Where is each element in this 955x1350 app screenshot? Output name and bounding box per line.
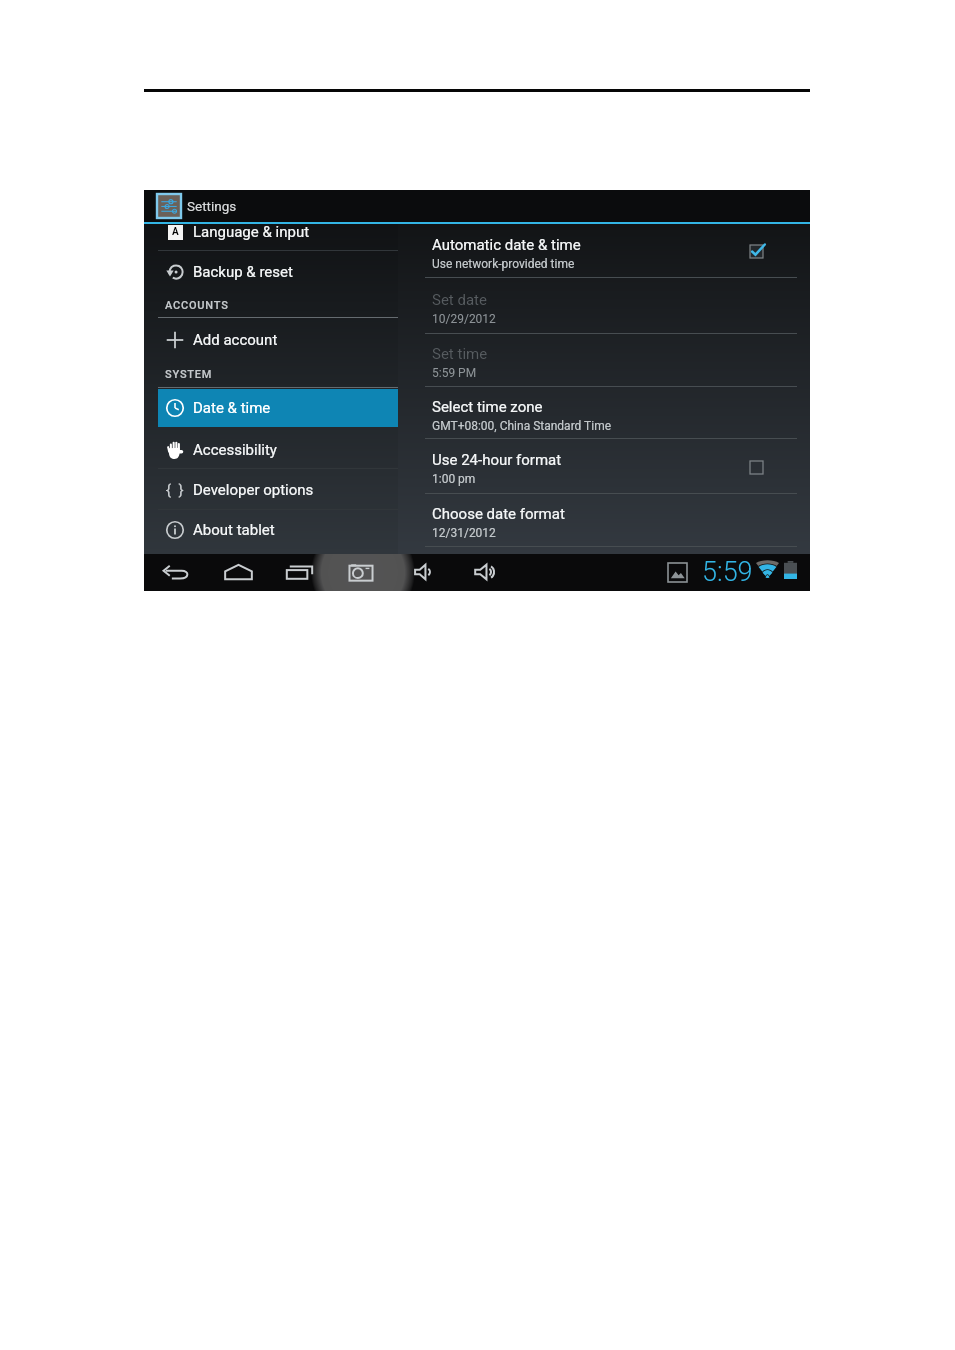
staticText: GMT+08:00, China Standard Time bbox=[432, 419, 612, 433]
button[interactable] bbox=[398, 333, 810, 386]
staticText: Language & input bbox=[193, 223, 310, 241]
button[interactable] bbox=[398, 386, 810, 438]
staticText: Use 24-hour format bbox=[432, 451, 562, 469]
button[interactable]: Add account bbox=[158, 323, 398, 357]
staticText: About tablet bbox=[193, 521, 275, 539]
staticText: 5:59 bbox=[702, 556, 753, 588]
button[interactable] bbox=[398, 438, 810, 493]
button[interactable] bbox=[398, 493, 810, 546]
button[interactable]: Home bbox=[221, 554, 255, 590]
staticText: SYSTEM bbox=[165, 368, 213, 381]
staticText: 10/29/2012 bbox=[432, 312, 496, 326]
button[interactable] bbox=[398, 224, 810, 277]
button[interactable]: Volume down bbox=[408, 554, 442, 590]
button[interactable]: A bbox=[158, 215, 398, 249]
button[interactable] bbox=[158, 389, 398, 427]
button[interactable]: Recent apps bbox=[282, 554, 316, 590]
button[interactable]: Backup & reset bbox=[158, 255, 398, 289]
staticText: { } bbox=[166, 481, 184, 499]
staticText: Backup & reset bbox=[193, 263, 293, 281]
staticText: A bbox=[172, 226, 179, 238]
staticText: Automatic date & time bbox=[432, 236, 581, 254]
button[interactable]: { } bbox=[158, 473, 398, 507]
button[interactable]: Accessibility bbox=[158, 433, 398, 467]
staticText: Accessibility bbox=[193, 441, 277, 459]
staticText: Settings bbox=[187, 198, 237, 214]
staticText: Choose date format bbox=[432, 505, 565, 523]
staticText: Date & time bbox=[193, 399, 271, 417]
staticText: Use network-provided time bbox=[432, 257, 575, 271]
staticText: Developer options bbox=[193, 481, 314, 499]
staticText: Select time zone bbox=[432, 398, 543, 416]
button[interactable]: Volume up bbox=[469, 554, 503, 590]
button[interactable] bbox=[398, 277, 810, 333]
button[interactable]: Screenshot bbox=[344, 554, 378, 590]
button[interactable]: About tablet bbox=[158, 513, 398, 547]
staticText: Set time bbox=[432, 345, 488, 363]
staticText: 1:00 pm bbox=[432, 472, 476, 486]
button[interactable]: Back bbox=[159, 554, 193, 590]
staticText: 12/31/2012 bbox=[432, 526, 496, 540]
button[interactable]: Date & time bbox=[158, 391, 398, 425]
staticText: Add account bbox=[193, 331, 278, 349]
staticText: Set date bbox=[432, 291, 487, 309]
staticText: ACCOUNTS bbox=[165, 299, 229, 312]
staticText: 5:59 PM bbox=[432, 366, 477, 380]
